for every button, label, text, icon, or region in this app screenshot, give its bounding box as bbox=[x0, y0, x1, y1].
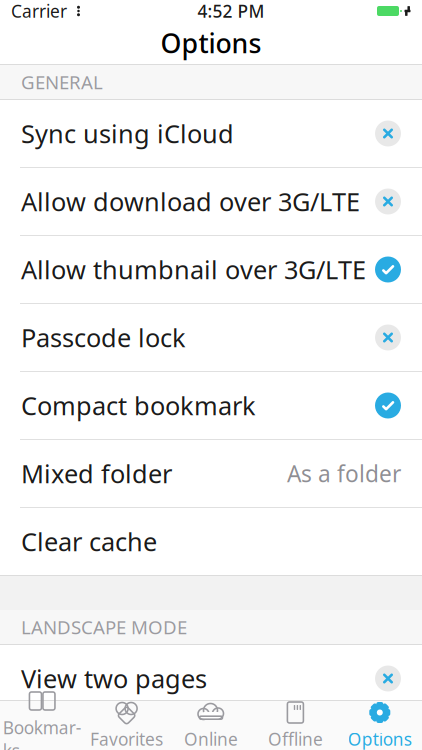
staticText: Carrier bbox=[11, 0, 67, 22]
staticText: Bookmarks bbox=[3, 716, 82, 750]
staticText: GENERAL bbox=[21, 70, 103, 94]
staticText: Passcode lock bbox=[21, 321, 186, 354]
staticText: Allow download over 3G/LTE bbox=[21, 185, 360, 218]
button[interactable]: Allow thumbnail over 3G/LTE bbox=[0, 236, 422, 303]
button[interactable]: Bookmarks bbox=[0, 701, 84, 750]
staticText: Online bbox=[184, 727, 238, 750]
staticText: As a folder bbox=[287, 458, 401, 488]
staticText: Compact bookmark bbox=[21, 389, 256, 422]
button[interactable]: Sync using iCloud bbox=[0, 100, 422, 167]
staticText: Favorites bbox=[90, 727, 163, 750]
button[interactable]: View two pages bbox=[0, 645, 422, 712]
button[interactable]: Online bbox=[169, 701, 253, 750]
staticText: View two pages bbox=[21, 662, 207, 695]
button[interactable]: Options bbox=[338, 701, 422, 750]
staticText: 4:52 PM bbox=[197, 0, 264, 22]
button[interactable]: Compact bookmark bbox=[0, 372, 422, 439]
staticText: Page turn direction bbox=[21, 730, 251, 750]
staticText: Options bbox=[348, 727, 412, 750]
staticText: Options bbox=[160, 25, 261, 61]
staticText: LANDSCAPE MODE bbox=[21, 615, 187, 639]
button[interactable]: Favorites bbox=[84, 701, 169, 750]
button[interactable]: Page turn direction bbox=[0, 713, 422, 750]
staticText: Clear cache bbox=[21, 525, 157, 558]
staticText: Allow thumbnail over 3G/LTE bbox=[21, 253, 366, 286]
staticText: Sync using iCloud bbox=[21, 117, 234, 150]
button[interactable]: Clear cache bbox=[0, 508, 422, 575]
button[interactable]: Passcode lock bbox=[0, 304, 422, 371]
button[interactable]: Allow download over 3G/LTE bbox=[0, 168, 422, 235]
staticText: Offline bbox=[268, 727, 323, 750]
button[interactable]: Offline bbox=[253, 701, 338, 750]
button[interactable]: Mixed folder bbox=[0, 440, 422, 507]
staticText: Right to left bbox=[276, 731, 401, 750]
staticText: Mixed folder bbox=[21, 457, 172, 490]
